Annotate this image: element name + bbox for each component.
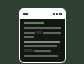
other: Signal strength <box>53 13 55 15</box>
other: Battery <box>59 13 62 15</box>
button[interactable] <box>24 22 44 24</box>
other: Wi-Fi <box>56 13 58 15</box>
